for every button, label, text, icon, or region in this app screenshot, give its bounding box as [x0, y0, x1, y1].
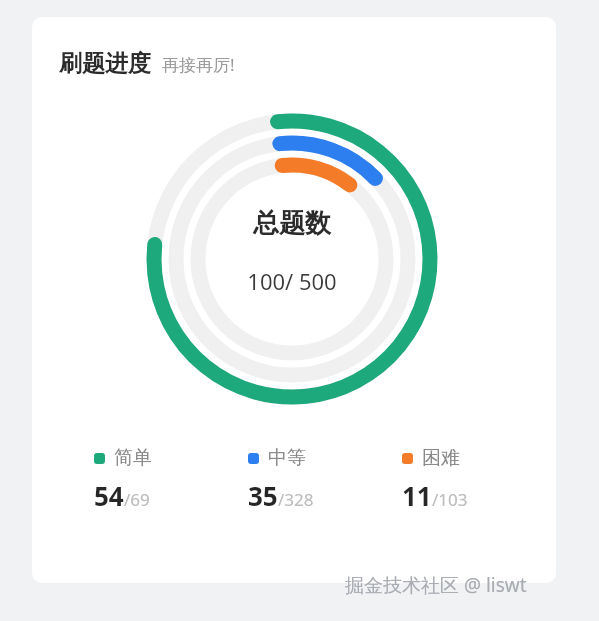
staticText: 再接再厉!: [162, 53, 235, 76]
other: 刷题进度环形图: [132, 99, 452, 419]
staticText: 困难: [422, 446, 460, 470]
staticText: 刷题进度: [59, 49, 151, 78]
staticText: 54: [94, 478, 124, 513]
staticText: /69: [124, 488, 150, 511]
staticText: /103: [432, 488, 468, 511]
staticText: /328: [278, 488, 314, 511]
button[interactable]: 困难: [402, 446, 516, 513]
staticText: 总题数: [253, 207, 331, 240]
button[interactable]: 刷题进度: [59, 49, 235, 78]
staticText: 简单: [114, 446, 152, 470]
button[interactable]: 中等: [248, 446, 362, 513]
button[interactable]: 简单: [94, 446, 208, 513]
staticText: 35: [248, 478, 278, 513]
staticText: 掘金技术社区 @ liswt: [345, 572, 527, 598]
staticText: 11: [402, 478, 432, 513]
staticText: 中等: [268, 446, 306, 470]
staticText: 100/ 500: [247, 266, 337, 296]
button[interactable]: 刷题进度: [32, 17, 556, 583]
